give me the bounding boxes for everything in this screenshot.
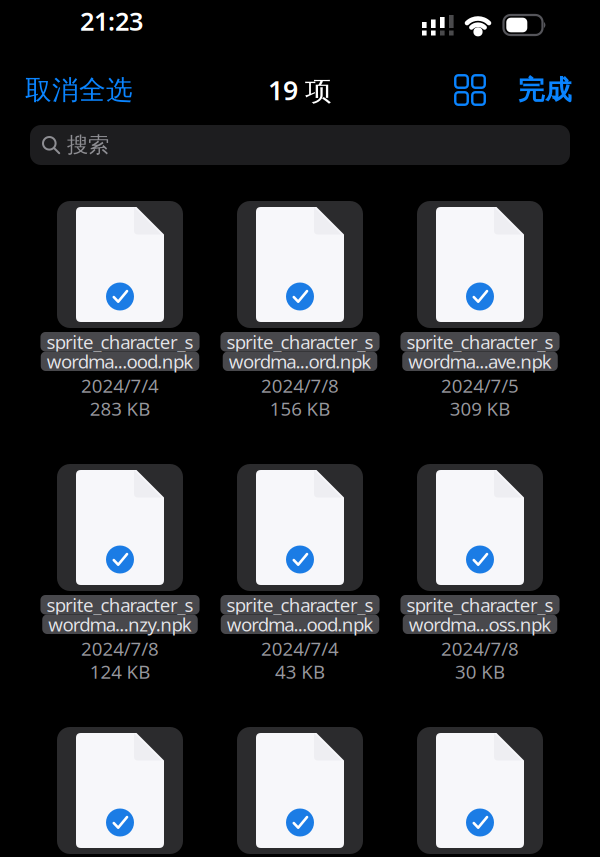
staticText: 搜索 [67, 132, 109, 158]
staticText: sprite_character_s [226, 329, 374, 354]
staticText: 取消全选 [25, 74, 133, 106]
button[interactable]: sprite_character_s [390, 460, 570, 680]
staticText: 2024/7/8 [441, 636, 519, 661]
staticText: sprite_character_s [226, 592, 374, 617]
staticText: 2024/7/5 [441, 373, 519, 398]
staticText: 2024/7/4 [81, 373, 159, 398]
staticText: 2024/7/4 [261, 636, 339, 661]
staticText: sprite_character_s [46, 592, 194, 617]
staticText: sprite_character_s [406, 329, 554, 354]
staticText: wordma...ood.npk [47, 349, 193, 374]
staticText: wordma...ave.npk [408, 349, 552, 374]
staticText: 309 KB [450, 396, 510, 421]
staticText: 30 KB [455, 659, 505, 684]
button[interactable]: sprite_character_s [30, 460, 210, 680]
staticText: wordma...ord.npk [229, 349, 371, 374]
button[interactable]: 搜索 [30, 125, 570, 165]
staticText: wordma...ood.npk [227, 612, 373, 637]
staticText: sprite_character_s [46, 329, 194, 354]
staticText: wordma...nzy.npk [48, 612, 192, 637]
button[interactable]: 取消全选 [25, 74, 133, 106]
staticText: 2024/7/8 [261, 373, 339, 398]
staticText: 完成 [518, 74, 572, 106]
button[interactable]: sprite_character_s [390, 197, 570, 417]
button[interactable]: 切换视图 [455, 75, 485, 105]
staticText: sprite_character_s [406, 592, 554, 617]
button[interactable]: sprite_character_swordmap 文件 [30, 723, 210, 854]
staticText: 283 KB [90, 396, 150, 421]
staticText: 21:23 [80, 4, 143, 38]
button[interactable]: sprite_character_s [210, 460, 390, 680]
button[interactable]: sprite_character_s [210, 197, 390, 417]
staticText: 156 KB [270, 396, 330, 421]
button[interactable]: sprite_character_s [30, 197, 210, 417]
staticText: 124 KB [90, 659, 150, 684]
button[interactable]: sprite_character_swordmap 文件 [390, 723, 570, 854]
button[interactable]: 完成 [485, 74, 572, 106]
staticText: wordma...oss.npk [409, 612, 551, 637]
staticText: 43 KB [275, 659, 325, 684]
staticText: 19 项 [268, 72, 332, 108]
button[interactable]: sprite_character_swordmap 文件 [210, 723, 390, 854]
staticText: 2024/7/8 [81, 636, 159, 661]
